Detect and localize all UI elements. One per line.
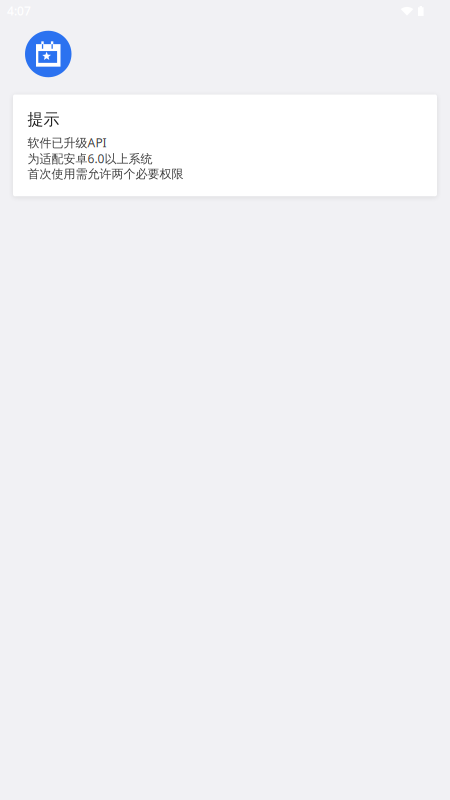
staticText: 提示 xyxy=(27,109,59,129)
button[interactable]: App icon xyxy=(25,30,71,77)
staticText: 软件已升级API xyxy=(27,135,106,151)
staticText: 4:07 xyxy=(7,3,31,19)
staticText: 为适配安卓6.0以上系统 xyxy=(27,151,152,166)
staticText: 首次使用需允许两个必要权限 xyxy=(27,166,183,181)
